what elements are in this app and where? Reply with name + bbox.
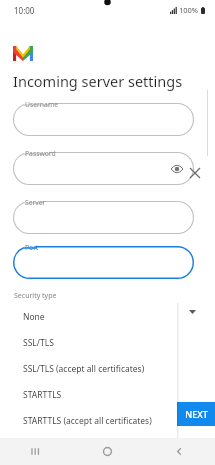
button[interactable]: SSL/TLS <box>9 330 177 356</box>
staticText: Password <box>25 149 56 158</box>
button[interactable]: NEXT <box>172 402 215 426</box>
staticText: Server <box>25 198 46 207</box>
button[interactable]: Username <box>13 103 194 136</box>
staticText: SSL/TLS <box>23 337 54 349</box>
staticText: None <box>23 311 45 323</box>
staticText: STARTTLS <box>23 389 62 401</box>
other: Gmail <box>13 46 33 61</box>
button[interactable]: Show password <box>169 161 185 177</box>
button[interactable]: Port <box>13 246 194 279</box>
button[interactable]: Password <box>13 152 194 185</box>
staticText: STARTTLS (accept all certificates) <box>23 415 152 427</box>
button[interactable]: Recents <box>0 438 71 465</box>
staticText: Security type <box>14 291 57 301</box>
staticText: Port <box>25 243 39 252</box>
button[interactable]: Server <box>13 201 194 234</box>
staticText: SSL/TLS (accept all certificates) <box>23 363 145 375</box>
button[interactable]: Clear password <box>184 162 206 184</box>
button[interactable]: Home <box>71 438 143 465</box>
staticText: NEXT <box>185 408 208 420</box>
staticText: Incoming server settings <box>13 71 183 91</box>
staticText: Username <box>25 100 59 109</box>
staticText: 100% <box>179 5 199 15</box>
staticText: 10:00 <box>14 5 35 16</box>
button[interactable]: STARTTLS <box>9 382 177 408</box>
button[interactable]: None <box>9 304 177 330</box>
button[interactable]: Open security type menu <box>183 303 201 321</box>
button[interactable]: Back <box>143 438 215 465</box>
button[interactable]: SSL/TLS (accept all certificates) <box>9 356 177 382</box>
button[interactable]: STARTTLS (accept all certificates) <box>9 408 177 434</box>
